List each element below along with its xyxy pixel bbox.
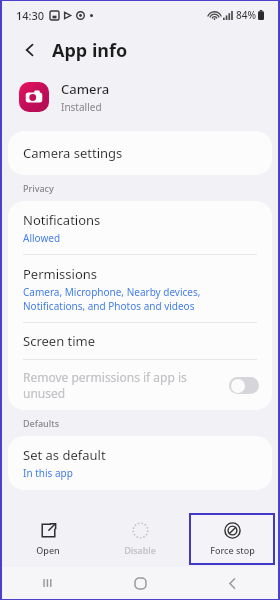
- staticText: Screen time: [23, 332, 96, 350]
- staticText: Camera, Microphone, Nearby devices, Noti…: [23, 285, 257, 313]
- staticText: 84%: [236, 8, 256, 22]
- staticText: Permissions: [23, 265, 98, 283]
- button[interactable]: Remove permissions if app is unused: [8, 360, 272, 410]
- button[interactable]: Force stop: [191, 515, 273, 563]
- staticText: Set as default: [23, 446, 106, 464]
- staticText: Allowed: [23, 231, 61, 245]
- staticText: Open: [36, 544, 60, 556]
- button[interactable]: Camera: [2, 71, 278, 123]
- staticText: Remove permissions if app is unused: [23, 369, 219, 401]
- button[interactable]: Set as default: [8, 436, 272, 490]
- staticText: App info: [52, 38, 128, 63]
- staticText: In this app: [23, 466, 73, 480]
- staticText: 14:30: [16, 8, 45, 23]
- staticText: Force stop: [210, 544, 255, 556]
- button[interactable]: Home: [94, 567, 186, 599]
- button[interactable]: Permissions: [8, 255, 272, 322]
- button[interactable]: Screen time: [8, 323, 272, 359]
- button[interactable]: Camera settings: [8, 131, 272, 175]
- button[interactable]: Back: [16, 36, 44, 64]
- staticText: Notifications: [23, 211, 101, 229]
- button[interactable]: Back: [186, 567, 278, 599]
- staticText: Camera settings: [23, 144, 123, 162]
- staticText: Disable: [124, 544, 156, 556]
- button[interactable]: Open: [5, 513, 91, 565]
- staticText: Camera: [61, 80, 110, 98]
- staticText: Privacy: [23, 182, 54, 194]
- staticText: Defaults: [23, 417, 60, 429]
- button[interactable]: Recent apps: [2, 567, 94, 599]
- button[interactable]: Notifications: [8, 201, 272, 254]
- staticText: Installed: [61, 100, 102, 114]
- button[interactable]: Disable: [97, 513, 183, 565]
